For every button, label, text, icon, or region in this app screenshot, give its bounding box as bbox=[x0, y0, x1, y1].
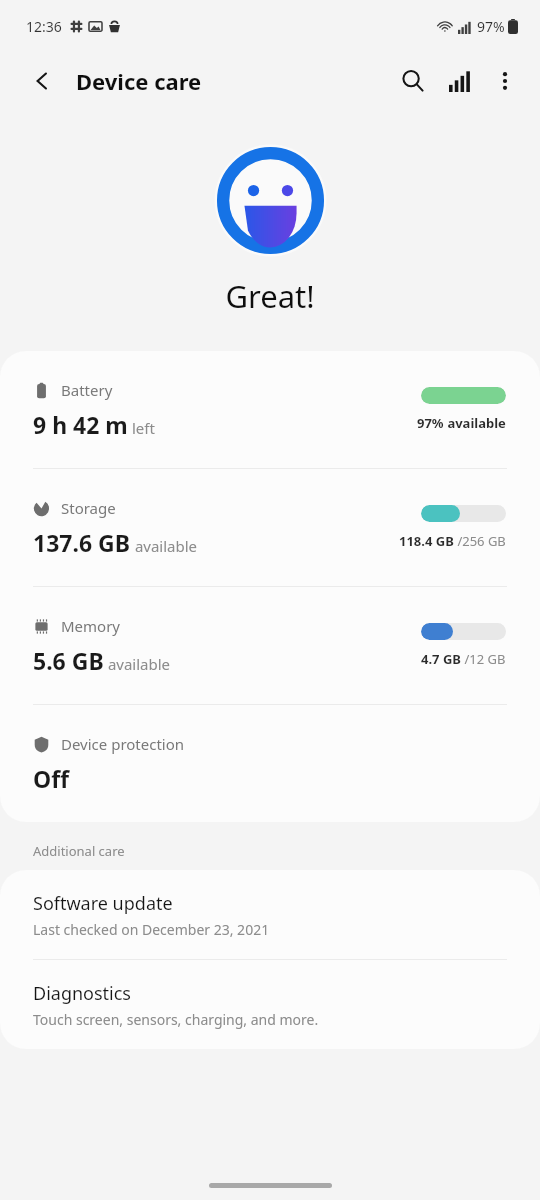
staticText: Great! bbox=[225, 275, 315, 317]
staticText: 5.6 GB bbox=[33, 645, 104, 676]
staticText: available bbox=[444, 414, 506, 432]
button[interactable]: Storage bbox=[0, 469, 540, 586]
staticText: Software update bbox=[33, 891, 173, 916]
staticText: Last checked on December 23, 2021 bbox=[33, 920, 270, 939]
staticText: 137.6 GB bbox=[33, 527, 131, 558]
button[interactable]: Software update bbox=[0, 870, 540, 959]
staticText: 12:36 bbox=[26, 17, 62, 36]
button[interactable]: Device protection bbox=[0, 705, 540, 822]
staticText: Diagnostics bbox=[33, 981, 131, 1006]
staticText: Device care bbox=[76, 66, 202, 96]
button[interactable]: Diagnostics bbox=[0, 960, 540, 1049]
staticText: Memory bbox=[61, 616, 121, 636]
staticText: Device protection bbox=[61, 734, 185, 754]
staticText: available bbox=[131, 536, 198, 556]
staticText: 97% bbox=[417, 414, 444, 432]
button[interactable]: More options bbox=[482, 58, 528, 104]
button[interactable]: Battery bbox=[0, 351, 540, 468]
staticText: left bbox=[128, 418, 155, 438]
staticText: available bbox=[104, 654, 171, 674]
staticText: 4.7 GB bbox=[421, 650, 461, 668]
staticText: 118.4 GB bbox=[399, 532, 454, 550]
staticText: 9 h 42 m bbox=[33, 409, 128, 440]
staticText: /12 GB bbox=[461, 650, 506, 668]
staticText: /256 GB bbox=[454, 532, 506, 550]
button[interactable]: Usage statistics bbox=[436, 58, 482, 104]
staticText: Touch screen, sensors, charging, and mor… bbox=[33, 1010, 319, 1029]
staticText: 97% bbox=[477, 17, 505, 36]
staticText: Battery bbox=[61, 380, 113, 400]
staticText: Additional care bbox=[33, 842, 125, 860]
button[interactable]: Memory bbox=[0, 587, 540, 704]
staticText: Storage bbox=[61, 498, 116, 518]
button[interactable]: Back bbox=[20, 59, 64, 103]
button[interactable]: Search bbox=[390, 58, 436, 104]
staticText: Off bbox=[33, 763, 69, 794]
